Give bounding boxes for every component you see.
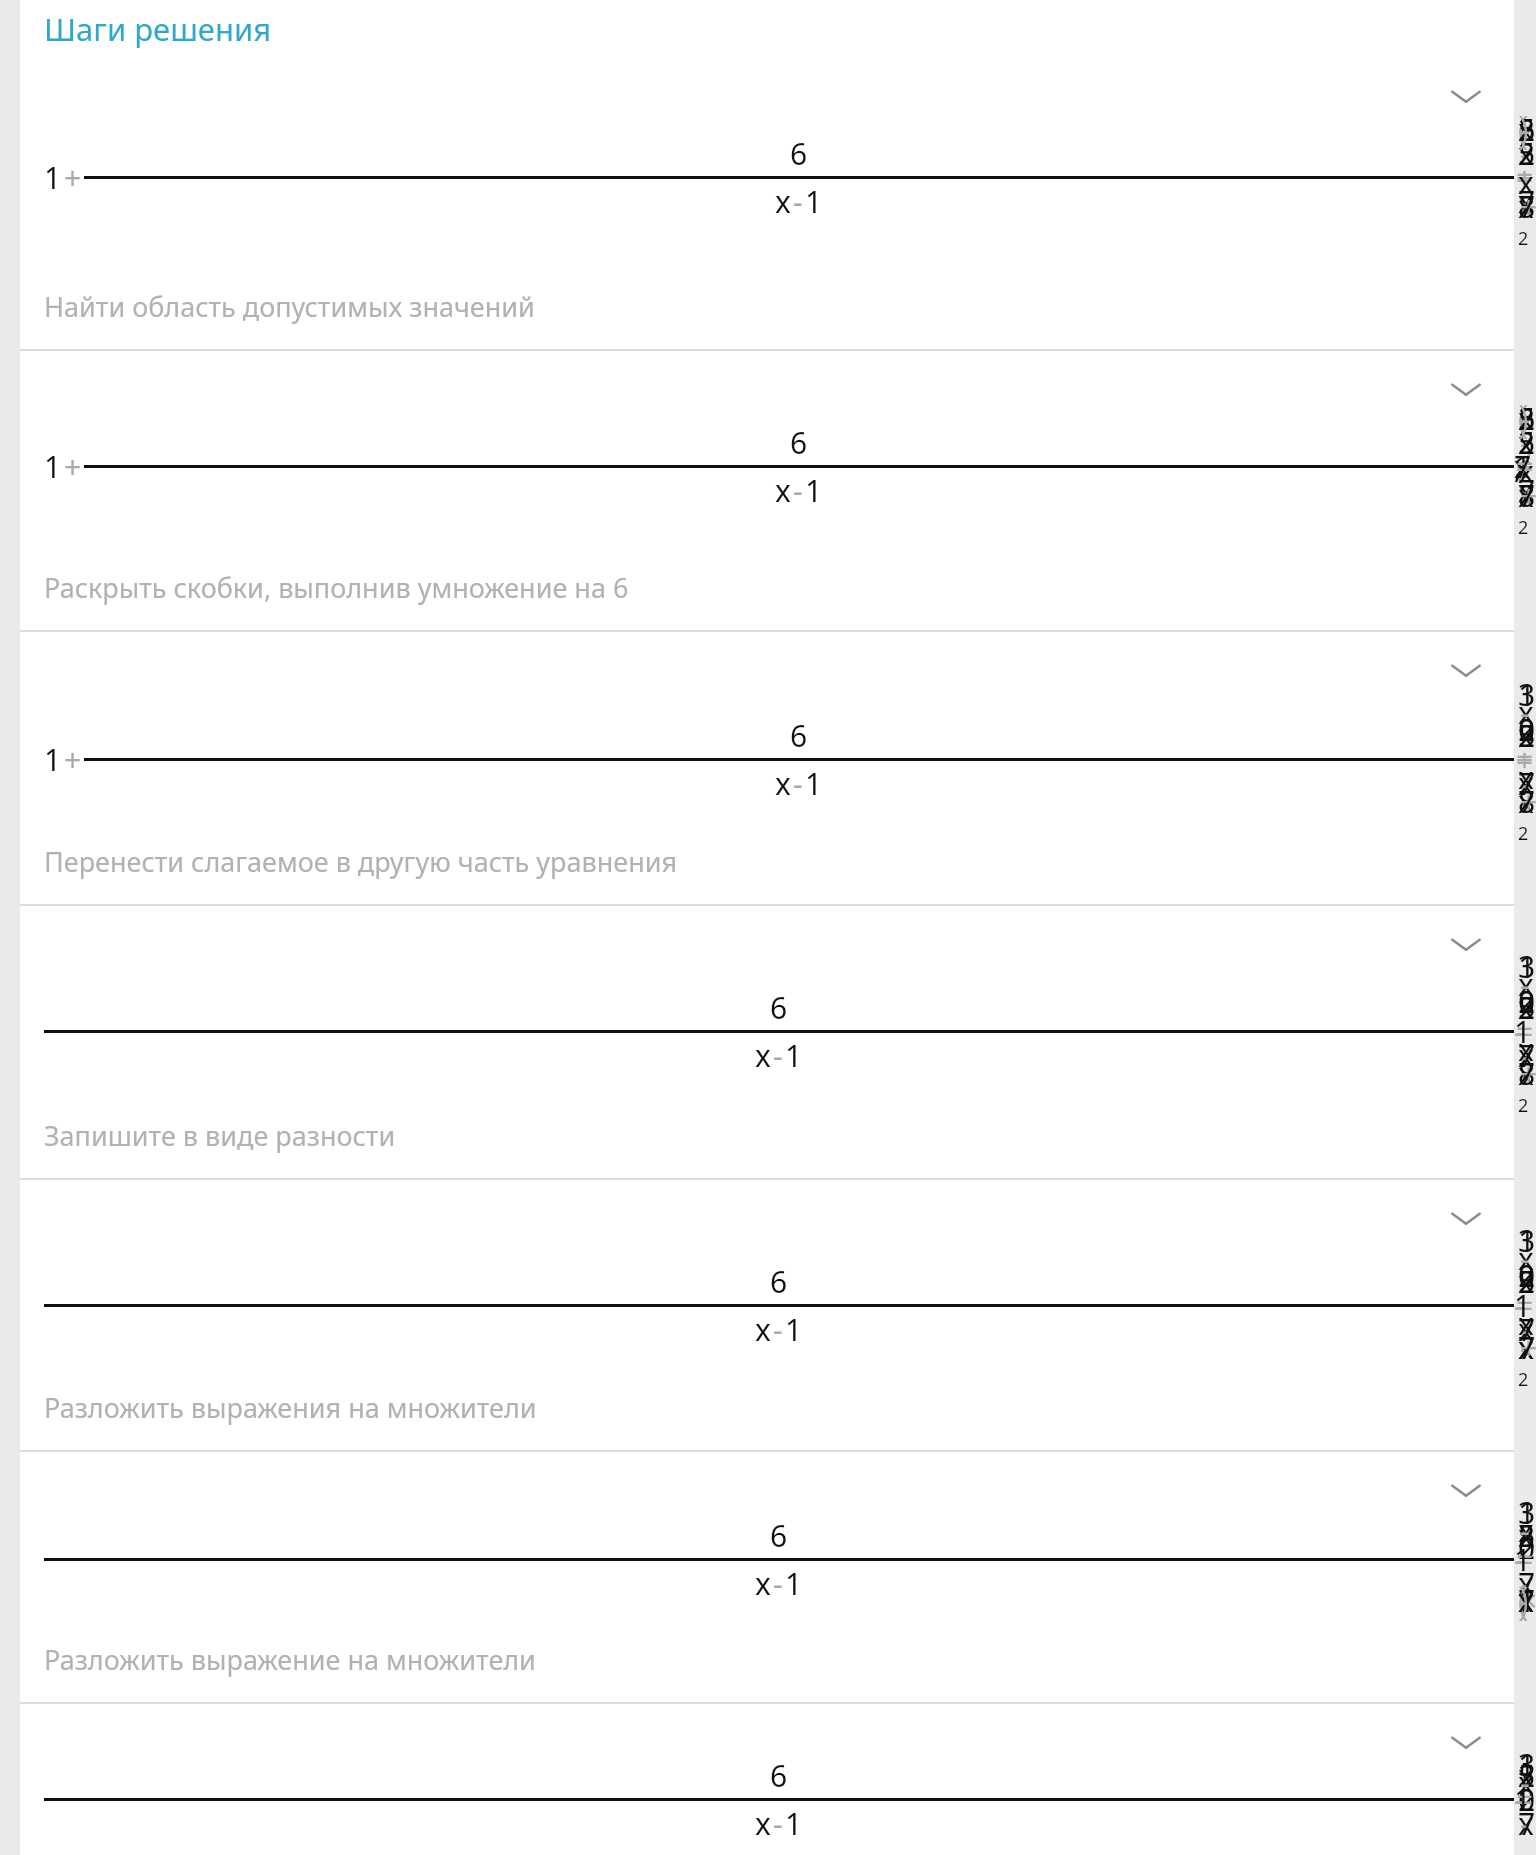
button[interactable]: Развернуть шаг [1448, 78, 1484, 114]
button[interactable]: Развернуть шаг [1448, 371, 1484, 407]
staticText: x [755, 1803, 771, 1844]
button[interactable]: Развернуть шаг [1448, 926, 1484, 962]
staticText: - [773, 1563, 783, 1604]
staticText: 1 [805, 470, 823, 511]
staticText: 1 [805, 763, 823, 804]
staticText: x [775, 470, 791, 511]
staticText: 6 [770, 1261, 788, 1302]
staticText: Найти область допустимых значений [44, 288, 535, 325]
staticText: Шаги решения [44, 8, 272, 50]
button[interactable]: Развернуть шаг [1448, 652, 1484, 688]
button[interactable]: 6 [20, 1452, 1514, 1702]
staticText: - [773, 1309, 783, 1350]
button[interactable]: 1 [20, 351, 1514, 630]
staticText: 1 [785, 1803, 803, 1844]
staticText: 6 [770, 987, 788, 1028]
staticText: 6 [790, 133, 808, 174]
staticText: 1 [805, 181, 823, 222]
staticText: 1 [785, 1309, 803, 1350]
staticText: x [775, 763, 791, 804]
staticText: 1 [44, 446, 62, 487]
staticText: Разложить выражения на множители [44, 1389, 537, 1426]
button[interactable]: Развернуть шаг [1448, 1472, 1484, 1508]
staticText: - [773, 1803, 783, 1844]
button[interactable]: 6 [20, 1704, 1514, 1855]
staticText: - [773, 1035, 783, 1076]
button[interactable]: Развернуть шаг [1448, 1200, 1484, 1236]
staticText: 1 [44, 157, 62, 198]
staticText: 6 [790, 715, 808, 756]
staticText: 1 [785, 1035, 803, 1076]
staticText: - [793, 181, 803, 222]
staticText: x [755, 1035, 771, 1076]
staticText: - [793, 470, 803, 511]
button[interactable]: 6 [20, 906, 1514, 1178]
staticText: Раскрыть скобки, выполнив умножение на 6 [44, 569, 629, 606]
staticText: Перенести слагаемое в другую часть уравн… [44, 843, 678, 880]
staticText: + [64, 446, 82, 487]
button[interactable]: 1 [20, 632, 1514, 904]
staticText: 6 [770, 1755, 788, 1796]
staticText: - [793, 763, 803, 804]
staticText: Запишите в виде разности [44, 1117, 396, 1154]
staticText: 6 [770, 1515, 788, 1556]
staticText: 1 [44, 739, 62, 780]
staticText: x [775, 181, 791, 222]
button[interactable]: Развернуть шаг [1448, 1724, 1484, 1760]
staticText: + [64, 739, 82, 780]
staticText: x [755, 1563, 771, 1604]
button[interactable]: 1 [20, 58, 1514, 349]
staticText: + [64, 157, 82, 198]
staticText: 6 [790, 422, 808, 463]
staticText: x [755, 1309, 771, 1350]
staticText: 1 [785, 1563, 803, 1604]
button[interactable]: 6 [20, 1180, 1514, 1450]
staticText: Разложить выражение на множители [44, 1641, 536, 1678]
